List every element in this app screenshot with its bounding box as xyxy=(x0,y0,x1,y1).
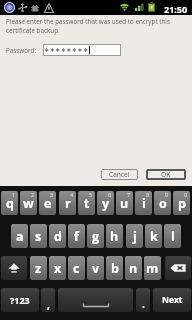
button[interactable]: y xyxy=(97,191,114,215)
button[interactable]: f xyxy=(68,224,85,248)
staticText: j xyxy=(133,228,137,245)
staticText: Cancel xyxy=(109,170,130,179)
staticText: o xyxy=(159,195,167,212)
staticText: d xyxy=(54,228,62,245)
staticText: z xyxy=(35,260,42,277)
button[interactable]: Shift xyxy=(1,256,27,280)
staticText: 6 xyxy=(108,191,112,198)
staticText: ?123 xyxy=(10,294,30,306)
staticText: 9 xyxy=(165,191,169,198)
staticText: f xyxy=(74,228,79,245)
button[interactable]: ?123 xyxy=(1,288,39,312)
button[interactable]: . xyxy=(136,288,150,312)
staticText: 4 xyxy=(70,191,74,198)
button[interactable]: r xyxy=(59,191,76,215)
button[interactable]: o xyxy=(154,191,171,215)
staticText: ∗∗∗∗∗∗∗∗ xyxy=(44,46,89,53)
staticText: 2 xyxy=(31,191,35,198)
staticText: e xyxy=(44,195,52,212)
staticText: 7 xyxy=(127,191,131,198)
staticText: v xyxy=(92,260,100,277)
button[interactable]: w xyxy=(20,191,37,215)
staticText: h xyxy=(110,228,119,245)
staticText: OK xyxy=(161,170,171,179)
staticText: r xyxy=(65,195,71,212)
staticText: 8 xyxy=(146,191,150,198)
button[interactable]: l xyxy=(164,224,181,248)
button[interactable]: h xyxy=(106,224,123,248)
button[interactable]: t xyxy=(78,191,95,215)
staticText: u xyxy=(120,195,129,212)
staticText: m xyxy=(146,260,159,277)
button[interactable]: Cancel xyxy=(101,169,138,180)
staticText: k xyxy=(150,228,158,245)
staticText: 3 xyxy=(50,191,54,198)
button[interactable]: Space xyxy=(58,288,133,312)
button[interactable]: d xyxy=(49,224,66,248)
staticText: a xyxy=(16,228,24,245)
staticText: s xyxy=(35,228,42,245)
button[interactable]: a xyxy=(11,224,28,248)
button[interactable]: s xyxy=(30,224,47,248)
staticText: x xyxy=(54,260,62,277)
button[interactable]: g xyxy=(87,224,104,248)
staticText: Password: xyxy=(6,46,37,55)
button[interactable]: i xyxy=(135,191,152,215)
button[interactable]: x xyxy=(49,256,66,280)
button[interactable]: b xyxy=(106,256,123,280)
staticText: w xyxy=(23,195,34,212)
staticText: n xyxy=(129,260,138,277)
staticText: 0 xyxy=(184,191,188,198)
button[interactable]: ∗∗∗∗∗∗∗∗ xyxy=(43,44,121,56)
staticText: t xyxy=(84,195,90,212)
staticText: b xyxy=(111,260,119,277)
staticText: 5 xyxy=(89,191,93,198)
button[interactable]: j xyxy=(126,224,143,248)
button[interactable]: m xyxy=(144,256,161,280)
button[interactable]: Next xyxy=(153,288,191,312)
button[interactable]: k xyxy=(145,224,162,248)
staticText: 1 xyxy=(12,191,16,198)
button[interactable]: p xyxy=(173,191,190,215)
staticText: c xyxy=(73,260,80,277)
button[interactable]: Backspace xyxy=(165,256,191,280)
button[interactable]: , xyxy=(41,288,55,312)
staticText: i xyxy=(142,195,146,212)
button[interactable]: z xyxy=(30,256,47,280)
staticText: l xyxy=(171,228,175,245)
staticText: q xyxy=(6,195,14,212)
staticText: 21:50 xyxy=(164,3,188,15)
button[interactable]: e xyxy=(39,191,56,215)
button[interactable]: v xyxy=(87,256,104,280)
staticText: Next xyxy=(162,294,183,306)
staticText: p xyxy=(178,195,186,212)
button[interactable]: q xyxy=(1,191,18,215)
staticText: , xyxy=(47,298,50,312)
staticText: Please enter the password that was used … xyxy=(6,17,178,35)
staticText: . xyxy=(142,297,145,311)
button[interactable]: OK xyxy=(146,169,186,180)
button[interactable]: n xyxy=(125,256,142,280)
staticText: g xyxy=(92,228,100,245)
staticText: y xyxy=(102,195,110,212)
button[interactable]: u xyxy=(116,191,133,215)
button[interactable]: c xyxy=(68,256,85,280)
